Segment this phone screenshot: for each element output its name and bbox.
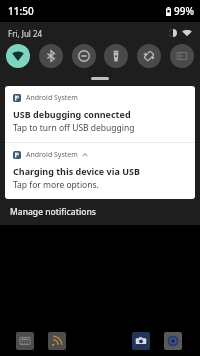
button[interactable]: Android System	[5, 86, 195, 142]
button[interactable]: Feed reader	[48, 332, 66, 350]
staticText: Tap for more options.	[13, 179, 99, 191]
staticText: Tap to turn off USB debugging	[13, 122, 135, 134]
button[interactable]: Chrome	[164, 332, 182, 350]
staticText: Charging this device via USB	[13, 165, 140, 177]
button[interactable]: Do Not Disturb	[72, 44, 96, 68]
staticText: Manage notifications	[10, 206, 96, 218]
staticText: 99%	[174, 4, 194, 18]
button[interactable]: Calculator	[16, 332, 34, 350]
staticText: Fri, Jul 24	[8, 28, 43, 39]
button[interactable]: Bluetooth	[39, 44, 63, 68]
staticText: Android System	[26, 150, 78, 160]
staticText: Android System	[26, 93, 78, 103]
button[interactable]: Manage notifications	[0, 199, 200, 225]
button[interactable]: Auto rotate	[137, 44, 161, 68]
button[interactable]: Android System	[5, 143, 195, 199]
button[interactable]: Wi-Fi	[6, 44, 30, 68]
staticText: USB debugging connected	[13, 108, 131, 120]
button[interactable]: Flashlight	[104, 44, 128, 68]
staticText: 11:50	[8, 4, 34, 18]
button[interactable]: Cast	[170, 44, 194, 68]
button[interactable]: Camera	[132, 332, 150, 350]
